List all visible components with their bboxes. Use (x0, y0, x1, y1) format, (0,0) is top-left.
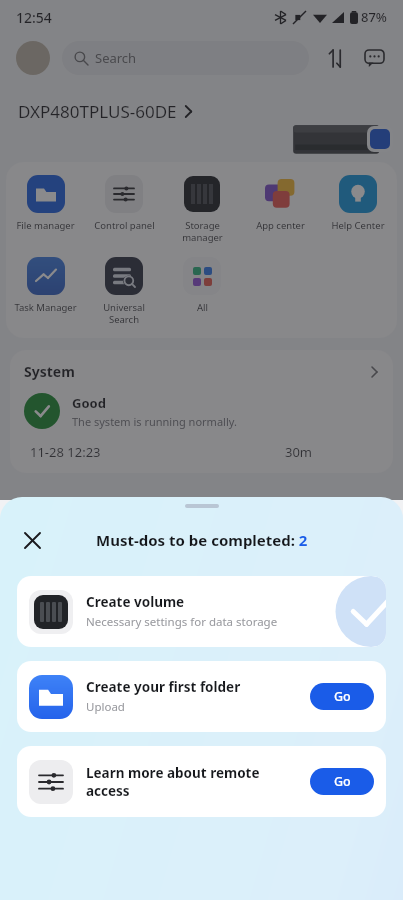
staticText: Search (95, 49, 137, 67)
button[interactable]: File manager (6, 172, 85, 234)
staticText: 30m (285, 443, 313, 461)
staticText: System (24, 362, 75, 381)
staticText: 11-28 12:23 (30, 443, 101, 461)
staticText: All (197, 301, 208, 314)
staticText: Good (72, 394, 106, 412)
staticText: Go (334, 773, 351, 790)
staticText: Create volume (86, 593, 185, 611)
staticText: Go (334, 688, 351, 705)
button[interactable]: Task Manager (6, 254, 85, 316)
button[interactable]: Universal Search (85, 254, 163, 328)
staticText: Upload (86, 699, 125, 715)
button[interactable]: Go (310, 683, 374, 710)
button[interactable]: All (163, 254, 241, 316)
staticText: 87% (361, 8, 387, 26)
button[interactable]: Create your first folder (17, 661, 386, 732)
button[interactable]: Help Center (319, 172, 397, 234)
button[interactable]: Close (18, 526, 46, 554)
button[interactable]: Profile (16, 41, 50, 75)
button[interactable]: Storage manager (163, 172, 241, 246)
button[interactable]: Control panel (85, 172, 163, 234)
staticText: DXP480TPLUS-60DE (18, 100, 177, 123)
button[interactable]: Transfers (323, 45, 349, 71)
staticText: Help Center (331, 219, 385, 232)
staticText: Learn more about remote access (86, 764, 302, 800)
button[interactable]: System (24, 362, 379, 381)
staticText: Necessary settings for data storage (86, 614, 278, 630)
button[interactable]: Messages (361, 45, 387, 71)
button[interactable]: Search (62, 41, 309, 75)
staticText: Control panel (94, 219, 155, 232)
staticText: Create your first folder (86, 678, 241, 696)
button[interactable]: App center (241, 172, 319, 234)
staticText: App center (256, 219, 305, 232)
staticText: The system is running normally. (72, 414, 237, 429)
button[interactable]: Create volume (17, 576, 386, 647)
button[interactable]: Go (310, 768, 374, 795)
staticText: Universal Search (103, 301, 145, 326)
button[interactable]: Learn more about remote access (17, 746, 386, 817)
staticText: Storage manager (182, 219, 223, 244)
staticText: 12:54 (16, 8, 52, 27)
staticText: Must-dos to be completed: 2 (96, 530, 308, 550)
staticText: File manager (16, 219, 75, 232)
staticText: Task Manager (14, 301, 77, 314)
